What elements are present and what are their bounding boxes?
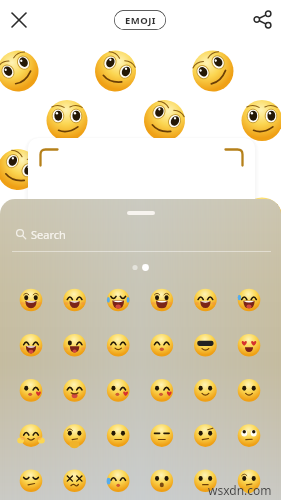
button[interactable]: Share bbox=[243, 0, 281, 39]
staticText: wsxdn.com bbox=[208, 482, 272, 498]
button[interactable]: Search bbox=[16, 222, 281, 246]
button[interactable]: Close bbox=[0, 0, 38, 39]
staticText: Search bbox=[31, 227, 66, 242]
staticText: EMOJI bbox=[125, 14, 156, 27]
button[interactable]: EMOJI bbox=[114, 10, 166, 30]
